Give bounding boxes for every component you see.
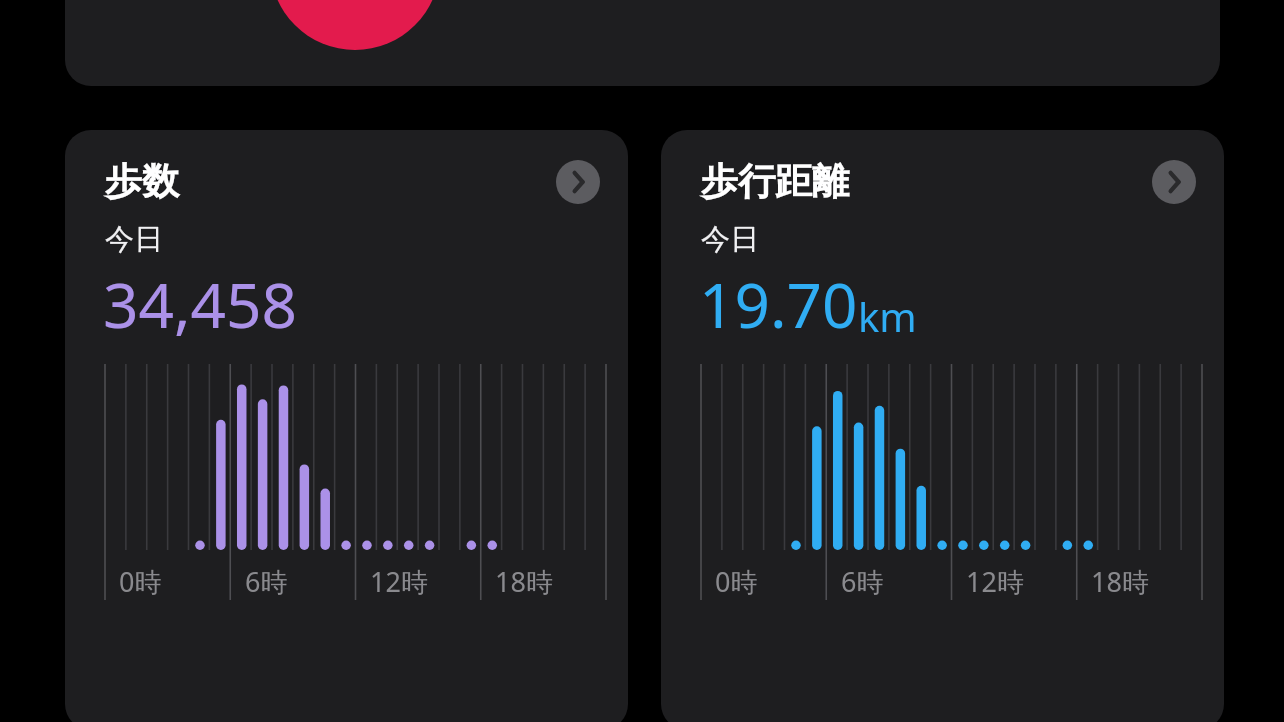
button[interactable] (65, 0, 1220, 86)
staticText: 19.70 (699, 262, 858, 346)
staticText: 歩数 (105, 158, 179, 205)
staticText: 18時 (1091, 563, 1149, 600)
staticText: km (858, 289, 917, 343)
staticText: 34,458 (103, 262, 297, 346)
staticText: 12時 (370, 563, 428, 600)
staticText: 今日 (701, 221, 759, 258)
staticText: 12時 (966, 563, 1024, 600)
staticText: 歩行距離 (701, 158, 849, 205)
button[interactable]: 歩行距離 (661, 130, 1224, 722)
staticText: 18時 (495, 563, 553, 600)
staticText: 6時 (841, 563, 884, 600)
staticText: 0時 (119, 563, 162, 600)
button[interactable]: 歩数 (65, 130, 628, 722)
staticText: 0時 (715, 563, 758, 600)
staticText: 6時 (245, 563, 288, 600)
button[interactable]: 詳細を表示 (556, 160, 600, 204)
button[interactable]: 詳細を表示 (1152, 160, 1196, 204)
staticText: 今日 (105, 221, 163, 258)
